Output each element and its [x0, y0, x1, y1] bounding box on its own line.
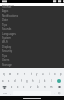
button[interactable]: s: [6, 78, 12, 84]
button[interactable]: k: [42, 78, 48, 84]
button[interactable]: x: [15, 84, 21, 90]
staticText: i: [49, 72, 50, 76]
button[interactable]: Apps: [0, 9, 64, 13]
button[interactable]: v: [27, 84, 34, 90]
staticText: Tips: [2, 54, 8, 58]
button[interactable]: ?123: [1, 91, 8, 95]
staticText: Search settings: [2, 4, 15, 6]
button[interactable]: n: [41, 84, 48, 90]
button[interactable]: Security: [0, 49, 64, 53]
staticText: u: [42, 72, 44, 76]
button[interactable]: h: [30, 78, 36, 84]
button[interactable]: i: [46, 71, 52, 77]
button[interactable]: y: [34, 71, 40, 77]
staticText: t: [31, 72, 32, 76]
staticText: Sounds: [2, 27, 12, 31]
button[interactable]: Display: [0, 45, 64, 49]
button[interactable]: d: [12, 78, 18, 84]
button[interactable]: o: [52, 71, 58, 77]
button[interactable]: Search settings: [0, 3, 64, 6]
staticText: w: [9, 72, 12, 76]
button[interactable]: m: [48, 84, 55, 90]
staticText: ☺: [58, 92, 61, 95]
staticText: Notifications: [2, 14, 18, 18]
button[interactable]: ☺: [56, 91, 63, 95]
button[interactable]: u: [40, 71, 46, 77]
button[interactable]: f: [18, 78, 24, 84]
staticText: Security: [2, 49, 13, 53]
button[interactable]: r: [21, 71, 28, 77]
staticText: ,: [10, 92, 11, 95]
button[interactable]: Notifications: [0, 14, 64, 18]
button[interactable]: Wi-Fi: [0, 40, 64, 44]
staticText: h: [32, 79, 34, 83]
button[interactable]: q: [0, 71, 7, 77]
staticText: a: [2, 79, 4, 83]
staticText: Storage: [2, 63, 12, 67]
button[interactable]: Sounds: [0, 27, 64, 31]
staticText: .: [54, 92, 55, 95]
staticText: m: [50, 85, 53, 89]
staticText: p: [60, 72, 62, 76]
staticText: y: [36, 72, 38, 76]
button[interactable]: Enter: [57, 79, 61, 83]
staticText: j: [39, 79, 40, 83]
staticText: k: [44, 79, 46, 83]
button[interactable]: a: [0, 78, 6, 84]
staticText: c: [23, 85, 25, 89]
button[interactable]: Backspace: [55, 84, 64, 90]
button[interactable]: t: [28, 71, 34, 77]
staticText: Sounds: [2, 5, 12, 9]
staticText: z: [11, 85, 13, 89]
button[interactable]: z: [9, 84, 15, 90]
staticText: Apps: [2, 9, 9, 13]
staticText: q: [3, 72, 5, 76]
button[interactable]: p: [58, 71, 64, 77]
staticText: d: [14, 79, 16, 83]
button[interactable]: Tips: [0, 54, 64, 58]
staticText: Wi-Fi: [2, 40, 9, 44]
staticText: Languages: [2, 32, 16, 36]
staticText: b: [37, 85, 39, 89]
staticText: o: [54, 72, 56, 76]
staticText: r: [24, 72, 26, 76]
staticText: l: [51, 79, 52, 83]
button[interactable]: Sounds: [0, 5, 64, 9]
button[interactable]: Date: [0, 18, 64, 22]
button[interactable]: e: [14, 71, 21, 77]
button[interactable]: Tips: [0, 23, 64, 27]
button[interactable]: g: [24, 78, 30, 84]
button[interactable]: Users: [0, 58, 64, 62]
staticText: e: [17, 72, 19, 76]
staticText: v: [30, 85, 32, 89]
staticText: Users: [2, 58, 10, 62]
button[interactable]: j: [36, 78, 42, 84]
staticText: f: [21, 79, 22, 83]
staticText: Display: [2, 45, 12, 49]
button[interactable]: Shift: [0, 84, 9, 90]
staticText: s: [8, 79, 10, 83]
button[interactable]: l: [48, 78, 54, 84]
button[interactable]: System: [0, 36, 64, 40]
staticText: Date: [2, 18, 8, 22]
staticText: ?123: [3, 92, 7, 94]
staticText: System: [2, 36, 12, 40]
staticText: Tips: [2, 23, 8, 27]
staticText: n: [44, 85, 46, 89]
button[interactable]: c: [21, 84, 27, 90]
staticText: g: [26, 79, 28, 83]
button[interactable]: Storage: [0, 63, 64, 67]
button[interactable]: Languages: [0, 32, 64, 36]
button[interactable]: b: [34, 84, 41, 90]
staticText: x: [17, 85, 19, 89]
button[interactable]: w: [7, 71, 14, 77]
